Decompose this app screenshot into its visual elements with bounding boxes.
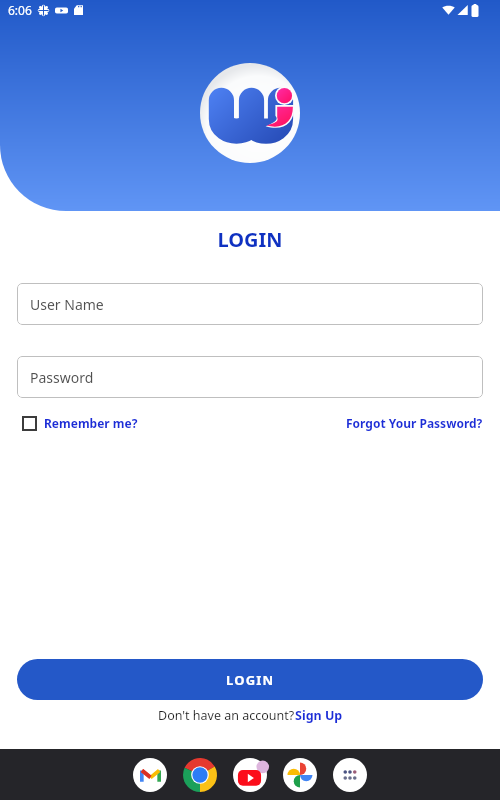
staticText: LOGIN — [0, 226, 500, 253]
staticText: Remember me? — [44, 415, 138, 431]
button[interactable]: Password — [17, 356, 483, 398]
button[interactable]: Remember me? — [22, 415, 138, 431]
button[interactable]: User Name — [17, 283, 483, 325]
button[interactable]: Gmail — [133, 758, 167, 792]
staticText: Don't have an account? — [158, 707, 295, 724]
button[interactable]: YouTube — [233, 758, 267, 792]
staticText: User Name — [30, 295, 104, 314]
button[interactable]: Forgot Your Password? — [346, 415, 483, 431]
button[interactable]: Photos — [283, 758, 317, 792]
button[interactable]: LOGIN — [17, 659, 483, 700]
staticText: Password — [30, 368, 94, 387]
staticText: LOGIN — [226, 671, 275, 689]
button[interactable]: Chrome — [183, 758, 217, 792]
button[interactable]: All apps — [333, 758, 367, 792]
button[interactable]: Sign Up — [295, 707, 343, 724]
staticText: 6:06 — [8, 2, 32, 18]
